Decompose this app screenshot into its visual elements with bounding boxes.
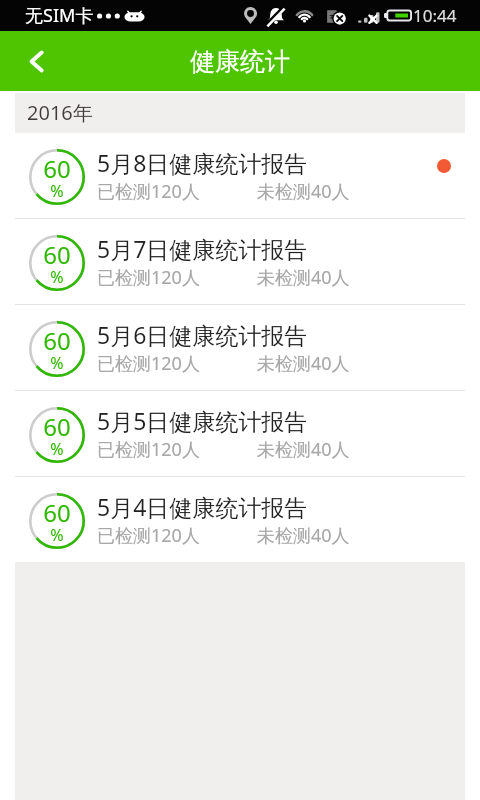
button[interactable]: Back — [0, 31, 72, 91]
staticText: % — [50, 524, 64, 546]
staticText: 未检测40人 — [257, 179, 350, 204]
staticText: % — [50, 266, 64, 288]
button[interactable]: 60 — [15, 305, 465, 390]
staticText: % — [50, 180, 64, 202]
staticText: 未检测40人 — [257, 523, 350, 548]
staticText: 已检测120人 — [97, 437, 200, 462]
staticText: 60 — [43, 152, 71, 185]
staticText: 已检测120人 — [97, 179, 200, 204]
staticText: 已检测120人 — [97, 265, 200, 290]
staticText: 60 — [43, 238, 71, 271]
staticText: 5月7日健康统计报告 — [97, 233, 308, 264]
staticText: 60 — [43, 410, 71, 443]
staticText: 10:44 — [413, 4, 457, 27]
staticText: 5月6日健康统计报告 — [97, 319, 308, 350]
staticText: 无SIM卡 — [25, 3, 94, 28]
staticText: 60 — [43, 496, 71, 529]
staticText: 5月4日健康统计报告 — [97, 491, 308, 522]
staticText: 未检测40人 — [257, 265, 350, 290]
staticText: % — [50, 438, 64, 460]
button[interactable]: 60 — [15, 133, 465, 218]
staticText: 5月5日健康统计报告 — [97, 405, 308, 436]
button[interactable]: 60 — [15, 219, 465, 304]
staticText: % — [50, 352, 64, 374]
staticText: 健康统计 — [190, 46, 290, 77]
staticText: 未检测40人 — [257, 351, 350, 376]
staticText: 60 — [43, 324, 71, 357]
staticText: 5月8日健康统计报告 — [97, 147, 308, 178]
button[interactable]: 60 — [15, 477, 465, 562]
staticText: 未检测40人 — [257, 437, 350, 462]
button[interactable]: 60 — [15, 391, 465, 476]
staticText: 已检测120人 — [97, 523, 200, 548]
staticText: 已检测120人 — [97, 351, 200, 376]
staticText: 2016年 — [27, 99, 93, 126]
